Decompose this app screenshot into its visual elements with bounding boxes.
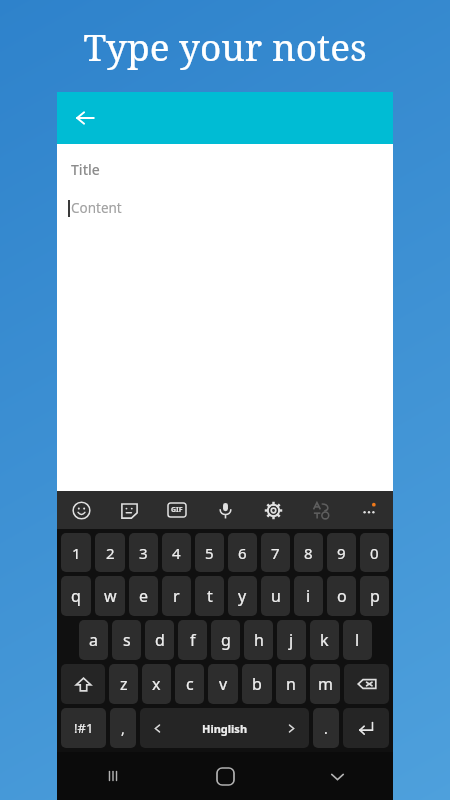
- button[interactable]: n: [276, 664, 306, 704]
- button[interactable]: Hinglish: [140, 708, 309, 748]
- staticText: 8: [304, 543, 313, 563]
- button[interactable]: Back: [67, 100, 103, 136]
- button[interactable]: 5: [195, 533, 224, 572]
- button[interactable]: z: [109, 664, 138, 704]
- staticText: a: [89, 629, 98, 651]
- button[interactable]: Backspace: [344, 664, 389, 704]
- staticText: v: [219, 673, 228, 695]
- staticText: Hinglish: [202, 721, 248, 736]
- button[interactable]: ,: [110, 708, 136, 748]
- button[interactable]: Content: [57, 199, 393, 217]
- staticText: j: [289, 629, 294, 651]
- button[interactable]: Hide keyboard: [281, 752, 393, 800]
- staticText: Title: [71, 160, 100, 179]
- button[interactable]: Stickers: [105, 491, 153, 529]
- staticText: 3: [139, 543, 148, 563]
- button[interactable]: p: [360, 576, 389, 616]
- button[interactable]: m: [310, 664, 340, 704]
- staticText: w: [104, 585, 117, 607]
- button[interactable]: a: [79, 620, 108, 660]
- button[interactable]: Home: [169, 752, 281, 800]
- staticText: n: [286, 673, 296, 695]
- button[interactable]: Keyboard settings: [249, 491, 297, 529]
- button[interactable]: 4: [162, 533, 191, 572]
- button[interactable]: e: [129, 576, 158, 616]
- button[interactable]: Shift: [61, 664, 105, 704]
- staticText: o: [337, 585, 347, 607]
- staticText: m: [318, 673, 333, 695]
- button[interactable]: g: [211, 620, 240, 660]
- staticText: p: [370, 585, 380, 607]
- button[interactable]: k: [310, 620, 339, 660]
- button[interactable]: 8: [294, 533, 323, 572]
- staticText: .: [324, 719, 328, 738]
- staticText: h: [254, 629, 264, 651]
- staticText: Type your notes: [83, 21, 367, 71]
- staticText: 0: [370, 543, 379, 563]
- button[interactable]: 9: [327, 533, 356, 572]
- staticText: t: [207, 585, 213, 607]
- button[interactable]: i: [294, 576, 323, 616]
- button[interactable]: 2: [95, 533, 125, 572]
- staticText: 6: [238, 543, 247, 563]
- staticText: d: [155, 629, 165, 651]
- staticText: Content: [71, 199, 122, 217]
- button[interactable]: y: [228, 576, 257, 616]
- button[interactable]: 6: [228, 533, 257, 572]
- staticText: l: [355, 629, 360, 651]
- button[interactable]: Title: [57, 158, 393, 181]
- button[interactable]: w: [95, 576, 125, 616]
- staticText: i: [306, 585, 311, 607]
- staticText: z: [120, 673, 128, 695]
- staticText: k: [320, 629, 329, 651]
- button[interactable]: s: [112, 620, 141, 660]
- button[interactable]: r: [162, 576, 191, 616]
- staticText: 1: [72, 543, 81, 563]
- button[interactable]: GIF: [153, 491, 201, 529]
- button[interactable]: v: [208, 664, 238, 704]
- button[interactable]: 0: [360, 533, 389, 572]
- button[interactable]: b: [242, 664, 272, 704]
- button[interactable]: q: [61, 576, 91, 616]
- staticText: GIF: [171, 505, 183, 515]
- button[interactable]: Voice input: [201, 491, 249, 529]
- staticText: 7: [271, 543, 280, 563]
- staticText: y: [238, 585, 247, 607]
- button[interactable]: Emoji: [57, 491, 105, 529]
- button[interactable]: x: [142, 664, 171, 704]
- staticText: b: [252, 673, 262, 695]
- staticText: 2: [106, 543, 115, 563]
- button[interactable]: !#1: [61, 708, 106, 748]
- staticText: x: [152, 673, 161, 695]
- staticText: 5: [205, 543, 214, 563]
- button[interactable]: o: [327, 576, 356, 616]
- button[interactable]: 7: [261, 533, 290, 572]
- button[interactable]: f: [178, 620, 207, 660]
- button[interactable]: c: [175, 664, 204, 704]
- button[interactable]: Recent apps: [57, 752, 169, 800]
- staticText: c: [186, 673, 194, 695]
- staticText: u: [271, 585, 281, 607]
- button[interactable]: j: [277, 620, 306, 660]
- button[interactable]: d: [145, 620, 174, 660]
- staticText: 4: [172, 543, 181, 563]
- button[interactable]: h: [244, 620, 273, 660]
- button[interactable]: 3: [129, 533, 158, 572]
- staticText: s: [123, 629, 131, 651]
- button[interactable]: .: [313, 708, 339, 748]
- staticText: q: [71, 585, 81, 607]
- button[interactable]: t: [195, 576, 224, 616]
- button[interactable]: Enter: [343, 708, 389, 748]
- staticText: r: [173, 585, 180, 607]
- button[interactable]: More options: [345, 491, 393, 529]
- button[interactable]: u: [261, 576, 290, 616]
- button[interactable]: l: [343, 620, 372, 660]
- staticText: e: [139, 585, 149, 607]
- staticText: ,: [121, 719, 125, 738]
- staticText: f: [190, 629, 196, 651]
- staticText: !#1: [74, 719, 94, 737]
- button[interactable]: 1: [61, 533, 91, 572]
- button[interactable]: Translate: [297, 491, 345, 529]
- staticText: g: [221, 629, 231, 651]
- staticText: 9: [337, 543, 346, 563]
